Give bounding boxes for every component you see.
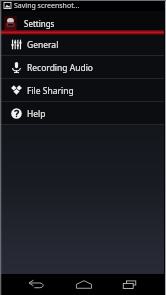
button[interactable]: Back xyxy=(15,274,57,295)
button[interactable]: File Sharing xyxy=(0,79,166,101)
staticText: Help xyxy=(27,108,46,120)
button[interactable]: Recent apps xyxy=(109,274,151,295)
staticText: Settings xyxy=(24,18,55,29)
button[interactable]: General xyxy=(0,33,166,55)
staticText: Saving screenshot… xyxy=(14,1,80,11)
button[interactable]: Recording Audio xyxy=(0,56,166,78)
button[interactable]: Help xyxy=(0,102,166,124)
staticText: File Sharing xyxy=(27,85,74,97)
button[interactable]: Home xyxy=(63,274,105,295)
staticText: Recording Audio xyxy=(27,62,94,74)
staticText: General xyxy=(27,39,59,51)
